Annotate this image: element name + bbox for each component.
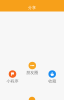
button[interactable]: 小程序	[2, 70, 22, 84]
button[interactable]: Add	[29, 97, 35, 100]
staticText: 朋友圈	[26, 70, 38, 75]
button[interactable]: 收藏	[42, 70, 62, 84]
staticText: 分享	[28, 5, 36, 10]
staticText: 小程序	[6, 79, 18, 84]
staticText: 收藏	[48, 79, 56, 84]
button[interactable]: 朋友圈	[22, 62, 42, 75]
